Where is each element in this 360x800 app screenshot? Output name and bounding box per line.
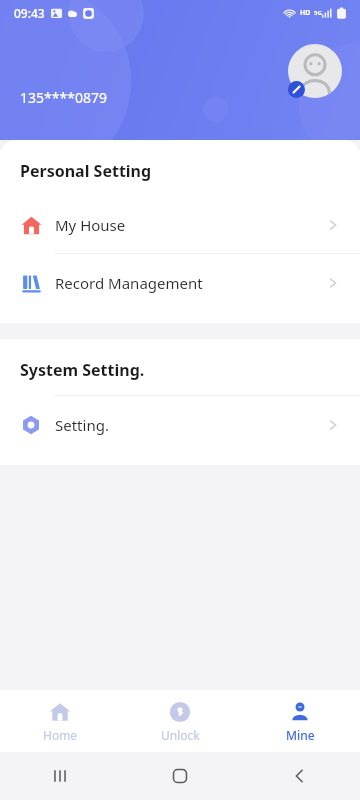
staticText: Home [43,727,78,743]
staticText: 5G [314,9,322,17]
staticText: Setting. [55,415,109,435]
button[interactable]: My House [0,196,360,253]
staticText: HD [300,8,311,18]
staticText: My House [55,215,126,235]
staticText: 09:43 [14,5,45,21]
button[interactable]: Home [0,694,120,749]
button[interactable]: Mine [240,694,360,749]
button[interactable]: Edit profile photo [288,44,342,98]
button[interactable]: Unlock [120,694,240,749]
button[interactable]: Setting. [0,396,360,453]
staticText: System Setting. [20,359,145,381]
staticText: Unlock [161,727,200,743]
staticText: Record Management [55,273,203,293]
staticText: Personal Setting [20,160,152,182]
staticText: 135****0879 [20,88,107,107]
staticText: Mine [286,727,315,743]
button[interactable]: Record Management [0,254,360,311]
